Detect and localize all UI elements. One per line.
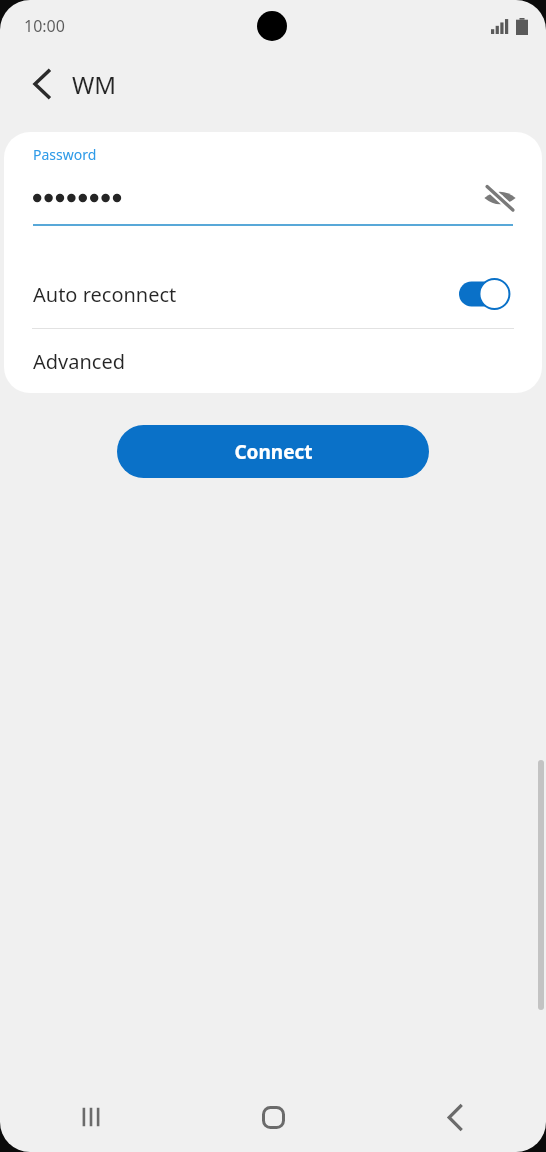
staticText: Connect bbox=[234, 439, 313, 465]
staticText: Password bbox=[33, 145, 97, 164]
button[interactable]: Recent apps bbox=[0, 1082, 182, 1152]
button[interactable]: Back bbox=[22, 64, 62, 104]
button[interactable]: Connect bbox=[117, 425, 429, 478]
staticText: 10:00 bbox=[24, 15, 65, 37]
button[interactable]: Show password bbox=[478, 176, 522, 220]
button[interactable]: Show password bbox=[4, 175, 542, 221]
staticText: Advanced bbox=[33, 348, 125, 375]
staticText: WM bbox=[72, 68, 117, 101]
button[interactable]: Auto reconnect toggle bbox=[459, 278, 511, 310]
button[interactable]: Advanced bbox=[4, 329, 542, 393]
staticText: Auto reconnect bbox=[33, 281, 459, 308]
button[interactable]: Auto reconnect bbox=[4, 260, 542, 328]
button[interactable]: Back bbox=[364, 1082, 546, 1152]
button[interactable]: Home bbox=[182, 1082, 364, 1152]
